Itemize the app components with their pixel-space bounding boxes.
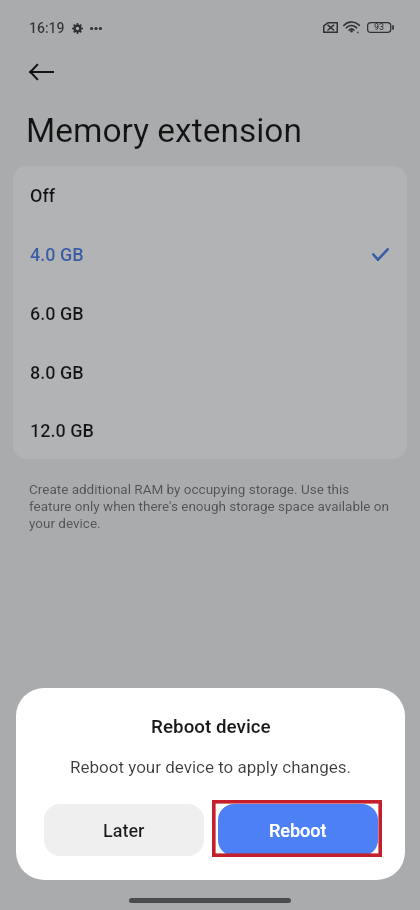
button[interactable]: Reboot	[218, 804, 378, 856]
staticText: 16:19	[29, 20, 65, 36]
button[interactable]: 12.0 GB	[13, 402, 407, 459]
staticText: Reboot your device to apply changes.	[70, 757, 351, 777]
staticText: Create additional RAM by occupying stora…	[29, 481, 391, 531]
staticText: Reboot	[269, 820, 327, 841]
staticText: 6.0 GB	[30, 303, 84, 324]
button[interactable]: Back	[16, 58, 48, 86]
staticText: Memory extension	[26, 111, 302, 150]
staticText: Reboot device	[151, 716, 271, 738]
button[interactable]: Later	[44, 804, 204, 856]
button[interactable]: 4.0 GB	[13, 225, 407, 284]
button[interactable]: Off	[13, 166, 407, 225]
staticText: 8.0 GB	[30, 362, 84, 383]
staticText: Off	[30, 185, 56, 206]
button[interactable]: 8.0 GB	[13, 343, 407, 402]
button[interactable]: 6.0 GB	[13, 284, 407, 343]
staticText: 4.0 GB	[30, 244, 84, 265]
staticText: Later	[103, 820, 145, 841]
staticText: 93	[374, 22, 385, 33]
staticText: 12.0 GB	[30, 420, 94, 441]
